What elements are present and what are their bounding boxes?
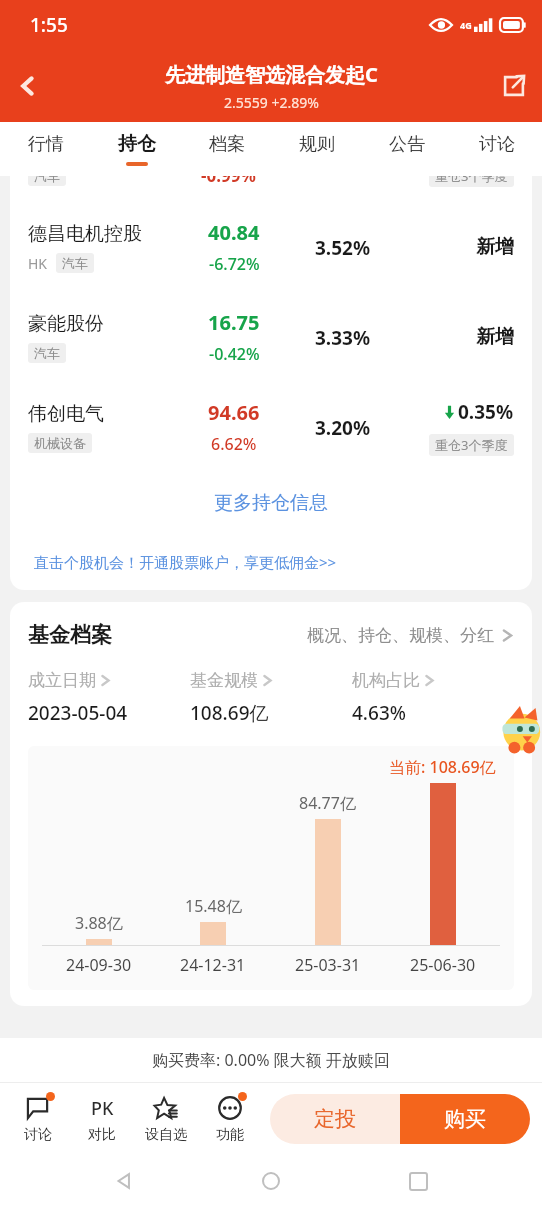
staticText: 汽车 (62, 255, 88, 271)
staticText: 汽车 (34, 176, 60, 184)
staticText: 2023-05-04 (28, 700, 128, 726)
button[interactable]: 德昌电机控股 (10, 202, 532, 292)
staticText: 更多持仓信息 (214, 491, 328, 515)
staticText: 重仓3个季度 (435, 436, 508, 454)
staticText: 概况、持仓、规模、分红 (307, 625, 494, 646)
staticText: 25-03-31 (295, 954, 361, 976)
button[interactable]: Share (486, 58, 542, 114)
staticText: 讨论 (24, 1126, 52, 1144)
button[interactable]: 规则 (272, 122, 362, 176)
button[interactable]: 机构占比 (352, 670, 514, 726)
button[interactable]: 基金规模 (190, 670, 352, 726)
staticText: 行情 (28, 133, 64, 156)
staticText: 机械设备 (34, 435, 86, 451)
button[interactable]: 公告 (362, 122, 452, 176)
button[interactable]: 伟创电气 (10, 382, 532, 472)
staticText: 重仓3个季度 (435, 176, 508, 185)
staticText: 24-12-31 (180, 954, 246, 976)
staticText: 公告 (389, 133, 425, 156)
button[interactable]: Home (249, 1159, 293, 1203)
staticText: 成立日期 (28, 670, 96, 691)
staticText: 3.52% (315, 235, 371, 261)
button[interactable]: 成立日期 (28, 670, 190, 726)
button[interactable]: 3.88亿 (28, 746, 514, 990)
staticText: 当前: 108.69亿 (389, 756, 496, 778)
staticText: 定投 (314, 1106, 356, 1132)
staticText: 讨论 (479, 133, 515, 156)
staticText: 3.20% (315, 415, 371, 441)
button[interactable]: 豪能股份 (10, 292, 532, 382)
staticText: 3.88亿 (75, 912, 123, 934)
button[interactable]: 行情 (0, 122, 91, 176)
button[interactable]: 档案 (182, 122, 272, 176)
button[interactable]: 讨论 (452, 122, 542, 176)
staticText: -6.72% (209, 253, 260, 275)
staticText: 购买 (444, 1106, 486, 1132)
staticText: PK (91, 1096, 114, 1121)
button[interactable]: 更多持仓信息 (10, 472, 532, 534)
staticText: 40.84 (208, 219, 260, 246)
staticText: 0.35% (458, 399, 514, 425)
staticText: 直击个股机会！开通股票账户，享更低佣金>> (34, 552, 337, 572)
button[interactable]: Back (0, 58, 56, 114)
staticText: 6.62% (211, 433, 257, 455)
button[interactable]: 基金档案 (28, 622, 514, 648)
staticText: 3.33% (315, 325, 371, 351)
staticText: 2.5559 +2.89% (224, 93, 319, 112)
button[interactable]: 直击个股机会！开通股票账户，享更低佣金>> (34, 534, 532, 590)
staticText: -0.99% (201, 176, 256, 187)
staticText: 功能 (216, 1126, 244, 1144)
button[interactable]: 持仓 (91, 122, 182, 176)
button[interactable]: 讨论 (6, 1094, 70, 1144)
staticText: HK (28, 254, 48, 273)
staticText: 规则 (299, 133, 335, 156)
staticText: 24-09-30 (66, 954, 132, 976)
staticText: 对比 (88, 1126, 116, 1144)
staticText: 108.69亿 (190, 700, 269, 726)
staticText: 购买费率: 0.00% 限大额 开放赎回 (152, 1049, 390, 1071)
staticText: 伟创电气 (28, 402, 104, 426)
staticText: 档案 (209, 133, 245, 156)
staticText: 25-06-30 (410, 954, 476, 976)
staticText: 新增 (476, 325, 514, 349)
button[interactable]: 购买 (400, 1094, 530, 1144)
button[interactable]: 定投 (270, 1094, 400, 1144)
button[interactable]: 功能 (198, 1094, 262, 1144)
staticText: 机构占比 (352, 670, 420, 691)
staticText: 先进制造智选混合发起C (165, 61, 378, 88)
staticText: 持仓 (118, 132, 156, 156)
staticText: 豪能股份 (28, 312, 104, 336)
staticText: 1:55 (30, 12, 68, 38)
staticText: -0.42% (209, 343, 260, 365)
staticText: 84.77亿 (299, 792, 356, 814)
staticText: 16.75 (208, 309, 260, 336)
button[interactable]: PK (70, 1094, 134, 1144)
staticText: 新增 (476, 235, 514, 259)
staticText: 4G (460, 19, 472, 31)
staticText: 德昌电机控股 (28, 222, 142, 246)
staticText: 汽车 (34, 345, 60, 361)
staticText: 设自选 (145, 1126, 187, 1144)
staticText: 15.48亿 (185, 895, 242, 917)
staticText: 94.66 (208, 399, 260, 426)
staticText: 基金规模 (190, 670, 258, 691)
staticText: 4.63% (352, 700, 406, 726)
button[interactable]: 设自选 (134, 1094, 198, 1144)
staticText: 基金档案 (28, 622, 112, 648)
button[interactable]: Recents (396, 1159, 440, 1203)
button[interactable]: Back (103, 1159, 147, 1203)
button[interactable]: Assistant (496, 705, 542, 757)
